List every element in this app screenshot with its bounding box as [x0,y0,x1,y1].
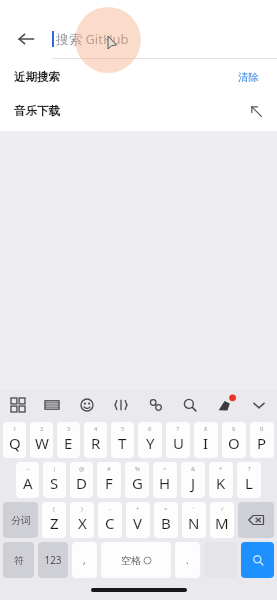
button[interactable]: Backspace [238,502,274,538]
button[interactable]: 8 [194,422,218,458]
staticText: ^ [163,465,167,473]
staticText: G [132,473,143,493]
staticText: 空格 [121,554,141,567]
staticText: 清除 [238,71,259,84]
staticText: S [50,473,59,493]
staticText: @ [79,465,85,473]
staticText: ~ [26,465,30,473]
button[interactable]: Keyboard [42,395,62,415]
staticText: O [228,433,240,453]
staticText: , [83,553,86,567]
staticText: 2 [40,425,44,433]
button[interactable]: ) [70,502,94,538]
button[interactable]: 搜索 GitHub [52,20,261,58]
staticText: I [203,433,209,453]
staticText: ' [193,505,195,513]
staticText: 符 [14,554,24,567]
button[interactable]: 清除 [234,67,263,88]
staticText: F [105,473,113,493]
button[interactable]: / [210,502,234,538]
staticText: ? [248,465,251,473]
button[interactable]: , [72,542,97,578]
button[interactable]: 分词 [3,502,38,538]
button[interactable]: @ [70,462,93,498]
staticText: L [245,473,253,493]
staticText: K [216,473,226,493]
staticText: ) [81,505,83,513]
button[interactable]: 6 [138,422,162,458]
button[interactable]: Keyboard layouts [8,395,28,415]
button[interactable]: % [125,462,149,498]
staticText: * [219,465,223,473]
button[interactable]: 1 [3,422,26,458]
staticText: . [186,553,189,567]
button[interactable]: Search [180,395,200,415]
button[interactable]: . [175,542,200,578]
button[interactable]: 9 [222,422,246,458]
staticText: R [91,433,101,453]
staticText: 9 [232,425,236,433]
staticText: V [133,513,143,533]
button[interactable]: 空格 [101,542,171,578]
staticText: 4 [94,425,98,433]
button[interactable]: Text cursor [111,395,131,415]
staticText: H [159,473,171,493]
staticText: 5 [121,425,125,433]
button[interactable]: Back [0,20,52,58]
staticText: / [221,505,224,513]
button[interactable]: 符 [3,542,34,578]
button[interactable]: # [97,462,121,498]
button[interactable]: | [43,462,66,498]
staticText: C [105,513,115,533]
button[interactable]: 7 [166,422,190,458]
staticText: N [188,513,200,533]
staticText: Y [146,433,155,453]
staticText: | [53,465,57,473]
button[interactable]: 2 [30,422,53,458]
button[interactable]: ~ [16,462,39,498]
button[interactable]: Emoji [77,395,97,415]
staticText: 8 [204,425,208,433]
button[interactable]: Voice input [215,395,235,415]
staticText: X [78,513,87,533]
button[interactable]: 4 [84,422,107,458]
staticText: & [191,465,196,473]
button[interactable]: + [126,502,150,538]
button[interactable]: ( [42,502,66,538]
staticText: ( [53,505,55,513]
staticText: E [64,433,73,453]
button[interactable]: ' [182,502,206,538]
staticText: + [136,505,140,513]
staticText: J [191,473,196,493]
staticText: U [173,433,184,453]
button[interactable]: Clipboard [146,395,166,415]
staticText: 近期搜索 [14,70,60,84]
staticText: 3 [67,425,71,433]
button[interactable]: 123 [38,542,68,578]
button[interactable]: 音乐下载 [0,95,277,127]
staticText: 7 [176,425,180,433]
staticText: Q [9,433,21,453]
staticText: 分词 [11,514,31,527]
button[interactable]: ? [237,462,261,498]
staticText: 音乐下载 [14,104,60,118]
staticText: - [109,505,111,513]
staticText: 0 [260,425,264,433]
button[interactable]: & [181,462,205,498]
staticText: 6 [148,425,152,433]
button[interactable]: - [98,502,122,538]
button[interactable]: Hide keyboard [249,395,269,415]
staticText: P [257,433,267,453]
button[interactable]: * [209,462,233,498]
button[interactable]: 5 [111,422,134,458]
button[interactable]: 3 [57,422,80,458]
staticText: M [215,513,229,533]
staticText: A [23,473,33,493]
staticText: W [35,433,49,453]
button[interactable]: 0 [250,422,274,458]
button[interactable]: ^ [153,462,177,498]
button[interactable]: Search [241,542,274,578]
button[interactable]: = [154,502,178,538]
staticText: 搜索 GitHub [56,30,129,48]
